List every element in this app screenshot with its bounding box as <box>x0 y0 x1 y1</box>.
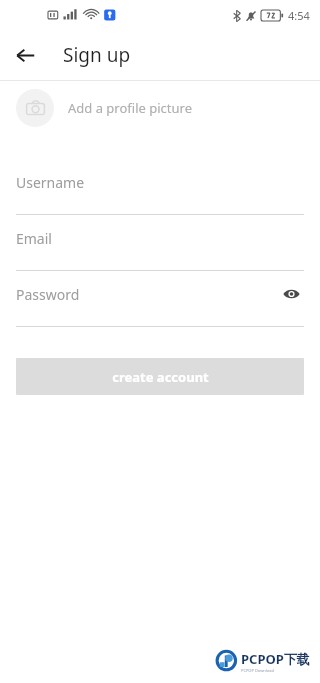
button[interactable]: Email <box>16 215 304 271</box>
staticText: Sign up <box>63 42 131 68</box>
staticText: Password <box>16 285 80 304</box>
button[interactable]: Password <box>16 271 304 327</box>
button[interactable]: Back <box>9 39 41 71</box>
staticText: Email <box>16 229 52 248</box>
button[interactable]: Username <box>16 159 304 215</box>
staticText: Add a profile picture <box>68 99 192 117</box>
staticText: create account <box>112 368 209 386</box>
staticText: PCPOP Download <box>241 668 274 673</box>
staticText: Username <box>16 173 85 192</box>
staticText: PCPOP下载 <box>241 650 310 668</box>
button[interactable]: Show password <box>278 281 304 307</box>
button[interactable]: Add a profile picture <box>16 81 304 135</box>
staticText: 4:54 <box>288 8 310 23</box>
button[interactable]: create account <box>16 358 304 395</box>
